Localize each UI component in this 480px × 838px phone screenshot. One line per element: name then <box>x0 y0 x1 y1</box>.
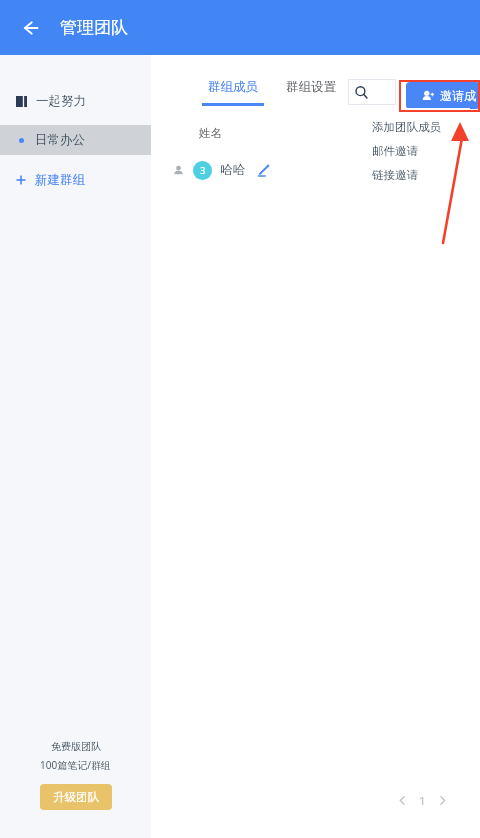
button[interactable]: 升级团队 <box>40 784 112 810</box>
staticText: 新建群组 <box>35 172 85 188</box>
button[interactable]: Edit <box>255 162 271 178</box>
button[interactable]: Back <box>14 12 46 44</box>
button[interactable]: 链接邀请 <box>358 163 470 186</box>
staticText: 升级团队 <box>53 790 99 804</box>
staticText: 100篇笔记/群组 <box>40 758 111 772</box>
staticText: 管理团队 <box>60 17 128 38</box>
staticText: 邀请成 <box>440 88 476 103</box>
button[interactable]: 邮件邀请 <box>358 139 470 163</box>
staticText: 一起努力 <box>36 93 86 109</box>
staticText: 链接邀请 <box>372 168 418 182</box>
button[interactable]: 3 <box>151 157 480 183</box>
staticText: 日常办公 <box>35 132 85 148</box>
staticText: 免费版团队 <box>51 740 101 753</box>
button[interactable]: 群组设置 <box>286 79 336 95</box>
button[interactable]: 群组成员 <box>202 79 264 106</box>
button[interactable]: Search <box>348 79 396 105</box>
button[interactable]: 日常办公 <box>0 125 151 155</box>
staticText: 群组成员 <box>208 79 258 95</box>
staticText: 姓名 <box>199 126 222 140</box>
staticText: 1 <box>419 793 426 808</box>
button[interactable]: Next page <box>432 790 452 810</box>
button[interactable]: Previous page <box>392 790 412 810</box>
staticText: 群组设置 <box>286 79 336 95</box>
button[interactable]: 新建群组 <box>0 165 151 195</box>
button[interactable]: 添加团队成员 <box>358 115 470 139</box>
staticText: 添加团队成员 <box>372 120 441 134</box>
staticText: 邮件邀请 <box>372 144 418 158</box>
button[interactable]: 一起努力 <box>0 85 151 117</box>
button[interactable]: 邀请成 <box>406 82 480 109</box>
staticText: 哈哈 <box>220 162 245 178</box>
button[interactable]: 1 <box>412 790 432 810</box>
staticText: 3 <box>200 164 206 177</box>
